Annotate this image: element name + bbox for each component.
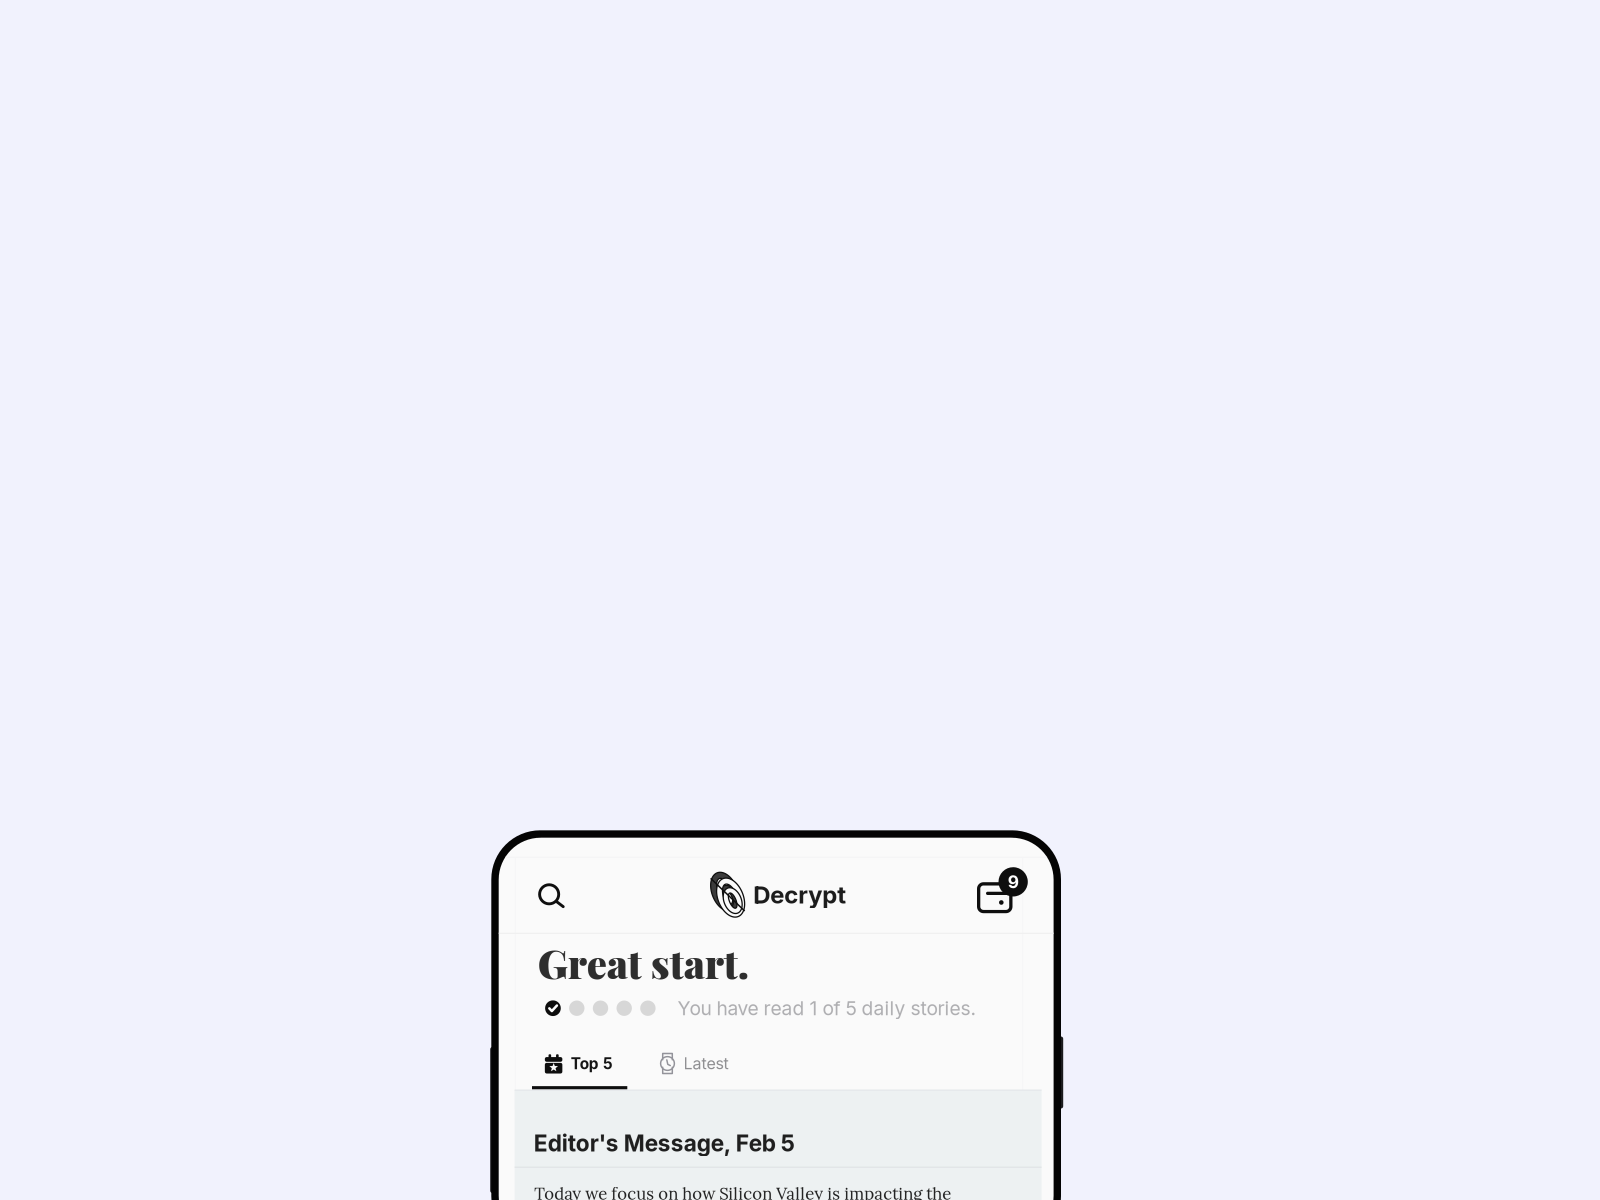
- staticText: You have read 1 of 5 daily stories.: [678, 997, 977, 1020]
- button[interactable]: Search: [528, 873, 574, 919]
- staticText: Latest: [683, 1054, 728, 1073]
- button[interactable]: Wallet, 9 notifications: [977, 867, 1028, 913]
- staticText: Decrypt: [753, 880, 846, 909]
- button[interactable]: Top 5: [532, 1041, 627, 1079]
- staticText: Great start.: [538, 936, 749, 989]
- staticText: Today we focus on how Silicon Valley is …: [534, 1183, 951, 1200]
- button[interactable]: Latest: [659, 1044, 728, 1082]
- staticText: Editor's Message, Feb 5: [534, 1129, 795, 1157]
- staticText: 9: [1008, 871, 1019, 892]
- staticText: Top 5: [571, 1054, 613, 1073]
